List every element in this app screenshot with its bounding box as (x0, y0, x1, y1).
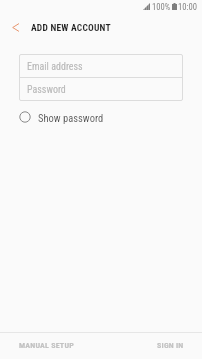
button[interactable]: Email address (19, 54, 183, 77)
staticText: MANUAL SETUP (19, 341, 74, 350)
staticText: Email address (27, 61, 83, 73)
button[interactable]: SIGN IN (101, 333, 202, 359)
staticText: Password (27, 84, 66, 96)
staticText: Show password (38, 112, 104, 124)
button[interactable]: MANUAL SETUP (0, 333, 101, 359)
staticText: SIGN IN (157, 341, 184, 350)
staticText: ADD NEW ACCOUNT (31, 22, 111, 33)
button[interactable]: Show password (15, 107, 108, 127)
button[interactable]: Password (19, 78, 183, 101)
staticText: 100% (152, 2, 171, 12)
button[interactable]: Back (4, 16, 26, 38)
staticText: 10:00 (178, 2, 197, 12)
